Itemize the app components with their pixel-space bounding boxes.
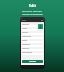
staticText: Edit your account [22,9,42,12]
button[interactable] [22,40,43,43]
button[interactable] [22,60,43,63]
button[interactable] [22,44,43,47]
button[interactable] [22,24,37,27]
button[interactable] [22,36,43,39]
button[interactable]: Profile photo [38,24,43,29]
staticText: before submitting [22,12,43,15]
button[interactable] [22,32,43,35]
button[interactable] [22,48,43,51]
staticText: Edit [29,3,36,8]
button[interactable] [22,52,43,55]
button[interactable] [22,28,37,31]
